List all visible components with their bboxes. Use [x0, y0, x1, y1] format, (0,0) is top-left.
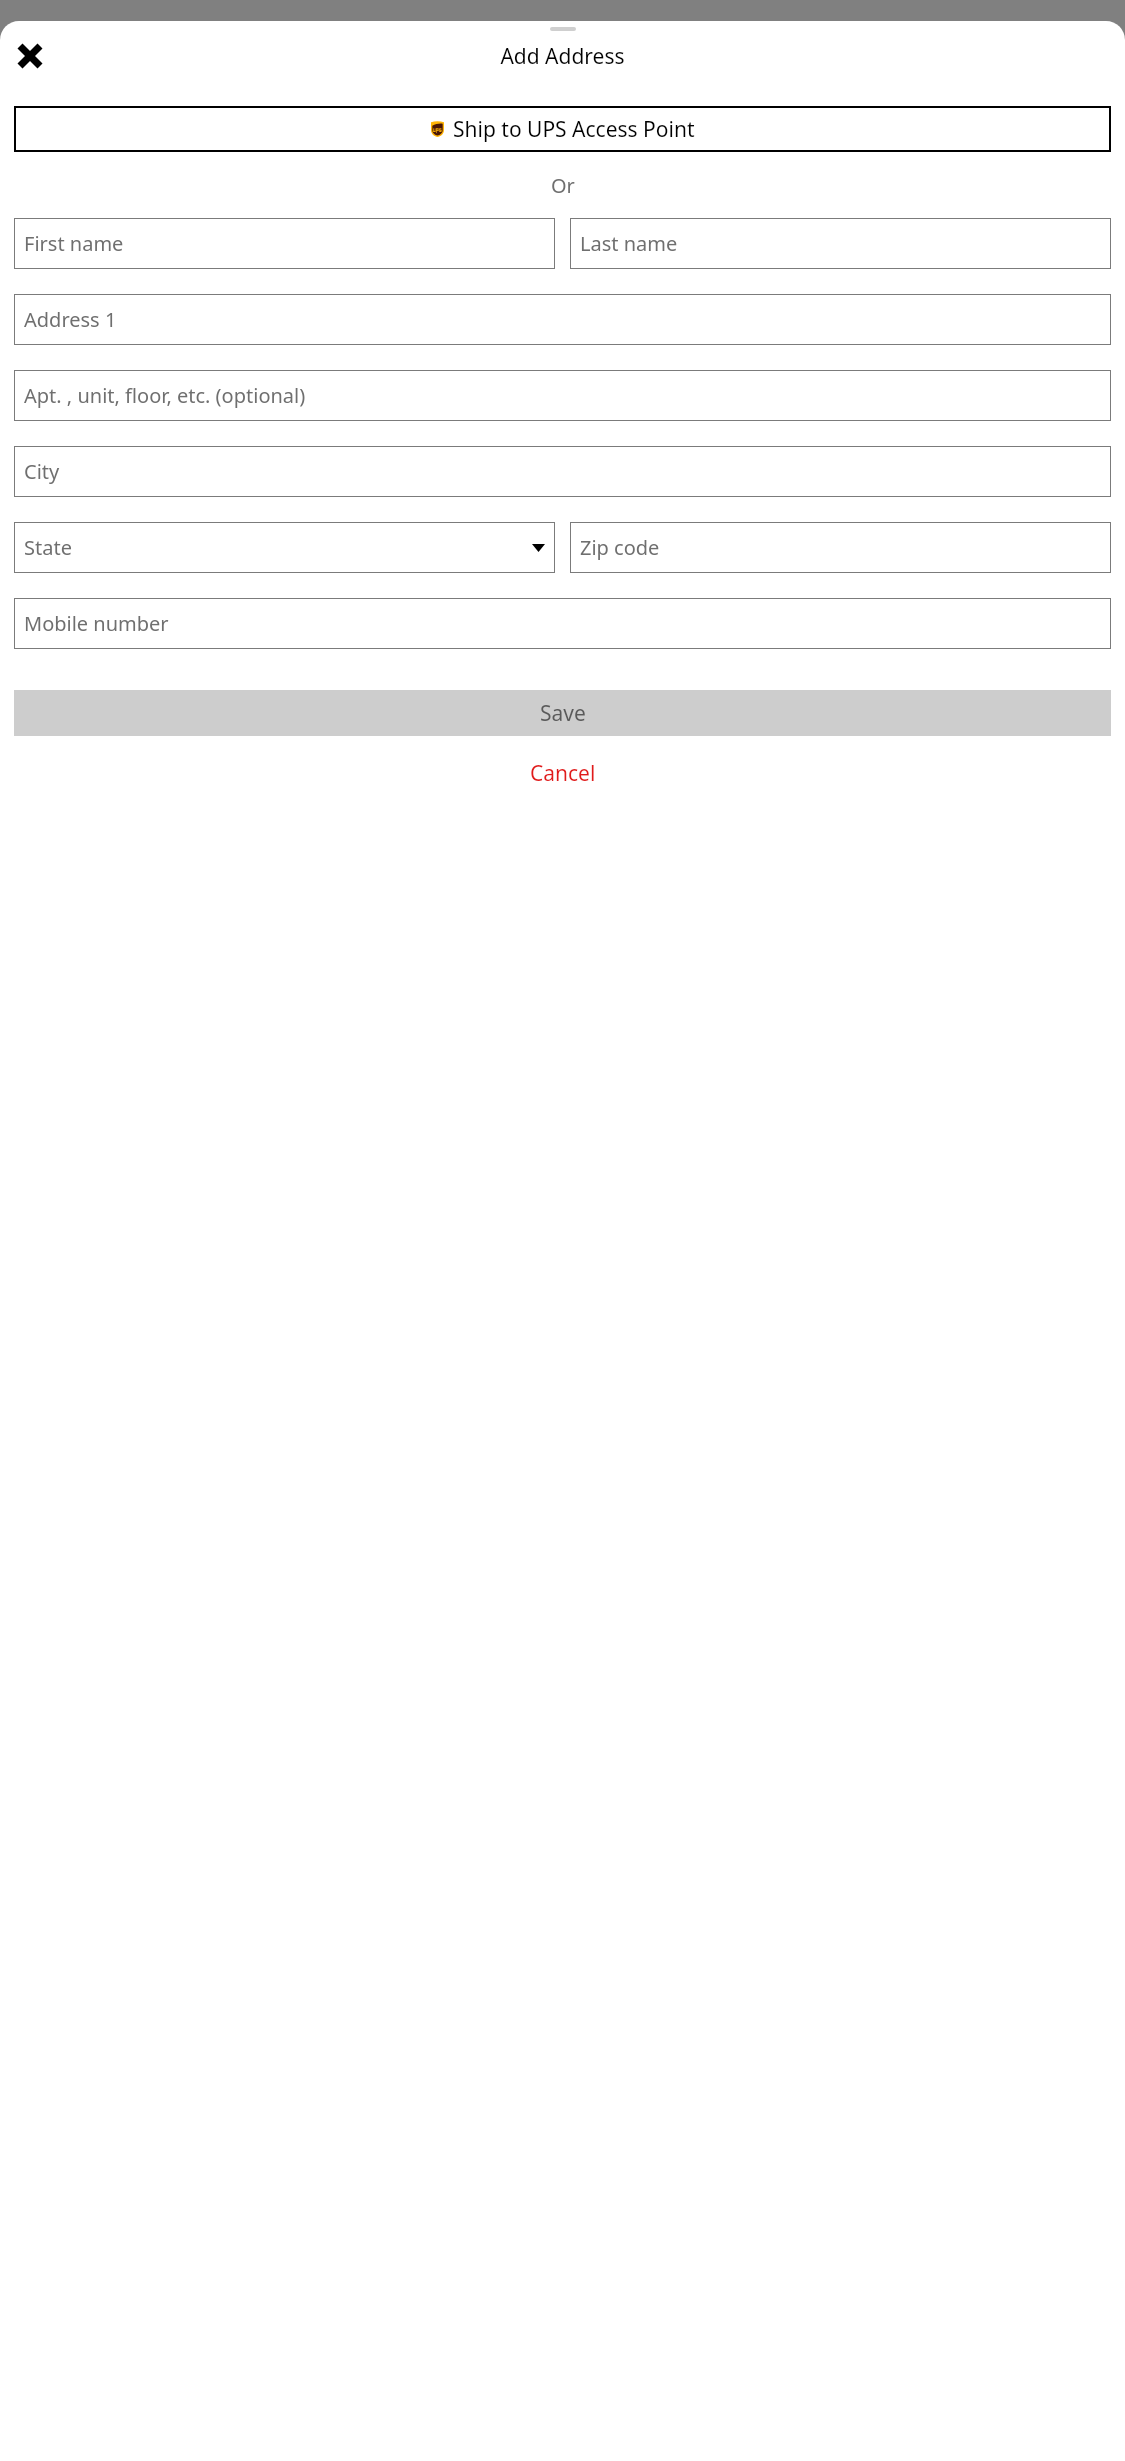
button[interactable]: Apt. , unit, floor, etc. (optional)	[14, 370, 1111, 421]
button[interactable]: Save	[14, 690, 1111, 736]
button[interactable]: First name	[14, 218, 555, 269]
button[interactable]: Address 1	[14, 294, 1111, 345]
staticText: Cancel	[530, 759, 596, 788]
staticText: Address 1	[24, 306, 117, 333]
staticText: Add Address	[500, 42, 625, 71]
staticText: City	[24, 458, 60, 485]
staticText: State	[24, 534, 72, 561]
button[interactable]: Mobile number	[14, 598, 1111, 649]
staticText: Zip code	[580, 534, 660, 561]
button[interactable]: Ship to UPS Access Point	[14, 106, 1111, 152]
button[interactable]: City	[14, 446, 1111, 497]
button[interactable]: Zip code	[570, 522, 1111, 573]
button[interactable]: Close	[9, 35, 51, 77]
staticText: Mobile number	[24, 610, 169, 637]
staticText: First name	[24, 230, 124, 257]
button[interactable]: State	[14, 522, 555, 573]
staticText: Last name	[580, 230, 678, 257]
staticText: Apt. , unit, floor, etc. (optional)	[24, 382, 306, 409]
staticText: Save	[540, 699, 586, 728]
button[interactable]: Last name	[570, 218, 1111, 269]
staticText: Ship to UPS Access Point	[453, 115, 695, 144]
staticText: Or	[551, 172, 575, 199]
button[interactable]: Cancel	[14, 751, 1111, 795]
